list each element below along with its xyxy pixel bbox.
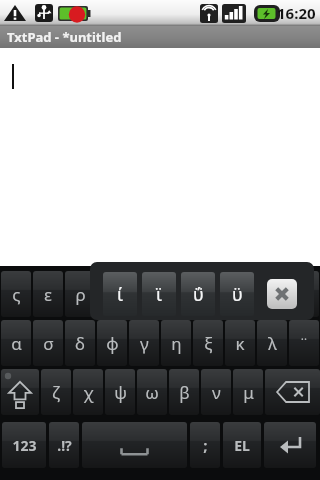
button[interactable]: ΰ <box>181 272 215 316</box>
staticText: ν <box>212 381 221 404</box>
button[interactable]: ς <box>1 271 31 317</box>
button[interactable]: EL <box>223 422 261 468</box>
button[interactable]: μ <box>233 369 263 415</box>
button[interactable]: Backspace <box>265 369 320 415</box>
staticText: φ <box>106 332 119 355</box>
button[interactable]: ; <box>190 422 220 468</box>
button[interactable]: π <box>257 271 287 317</box>
staticText: θ <box>171 283 182 306</box>
button[interactable]: ω <box>137 369 167 415</box>
staticText: λ <box>268 332 277 355</box>
staticText: ; <box>203 435 208 455</box>
staticText: κ <box>235 332 245 355</box>
staticText: ξ <box>204 332 213 355</box>
button[interactable] <box>0 48 320 266</box>
button[interactable]: ξ <box>193 320 223 366</box>
button[interactable]: υ <box>129 271 159 317</box>
button[interactable]: η <box>161 320 191 366</box>
button[interactable]: γ <box>129 320 159 366</box>
staticText: π <box>266 283 278 306</box>
staticText: EL <box>234 436 250 455</box>
button[interactable]: ρ <box>65 271 95 317</box>
staticText: TxtPad - *untitled <box>7 28 122 46</box>
button[interactable]: ο <box>225 271 255 317</box>
staticText: ϋ <box>232 282 243 307</box>
button[interactable]: Enter <box>264 422 316 468</box>
button[interactable]: Shift <box>1 369 39 415</box>
button[interactable]: δ <box>65 320 95 366</box>
button[interactable]: ί <box>103 272 137 316</box>
button[interactable]: κ <box>225 320 255 366</box>
button[interactable]: ι <box>193 271 223 317</box>
staticText: ϊ <box>156 282 162 307</box>
button[interactable]: ϋ <box>220 272 254 316</box>
staticText: ς <box>12 283 21 306</box>
staticText: ¨ <box>299 332 309 355</box>
staticText: 16:20 <box>277 3 316 23</box>
staticText: υ <box>139 283 150 306</box>
staticText: η <box>171 332 182 355</box>
button[interactable]: TxtPad - *untitled <box>0 26 320 48</box>
staticText: ί <box>117 282 123 307</box>
button[interactable]: φ <box>97 320 127 366</box>
button[interactable]: ε <box>33 271 63 317</box>
staticText: χ <box>83 381 94 404</box>
button[interactable]: ¨ <box>289 320 319 366</box>
staticText: μ <box>243 381 254 404</box>
button[interactable]: 123 <box>2 422 46 468</box>
staticText: σ <box>43 332 54 355</box>
staticText: ε <box>44 283 52 306</box>
button[interactable]: σ <box>33 320 63 366</box>
button[interactable]: Space <box>82 422 187 468</box>
staticText: γ <box>140 332 149 355</box>
staticText: ψ <box>114 381 127 404</box>
button[interactable]: Close <box>267 279 297 309</box>
staticText: ι <box>205 283 211 306</box>
button[interactable]: β <box>169 369 199 415</box>
button[interactable]: θ <box>161 271 191 317</box>
staticText: .!? <box>57 436 72 455</box>
button[interactable]: λ <box>257 320 287 366</box>
staticText: τ <box>108 283 117 306</box>
button[interactable]: τ <box>97 271 127 317</box>
staticText: ο <box>235 283 246 306</box>
staticText: β <box>179 381 190 404</box>
button[interactable]: .!? <box>49 422 79 468</box>
button[interactable]: ʹ <box>289 271 319 317</box>
staticText: α <box>11 332 22 355</box>
staticText: ω <box>145 381 159 404</box>
button[interactable]: ϊ <box>142 272 176 316</box>
staticText: δ <box>75 332 85 355</box>
staticText: 123 <box>12 436 37 455</box>
button[interactable]: ψ <box>105 369 135 415</box>
staticText: ρ <box>75 283 86 306</box>
button[interactable]: α <box>1 320 31 366</box>
button[interactable]: ν <box>201 369 231 415</box>
staticText: ΰ <box>193 282 204 307</box>
staticText: ζ <box>52 381 60 404</box>
button[interactable]: χ <box>73 369 103 415</box>
button[interactable]: ζ <box>41 369 71 415</box>
